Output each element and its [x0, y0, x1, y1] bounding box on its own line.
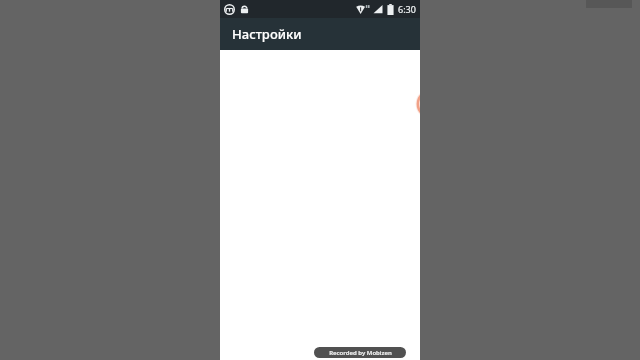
other: Battery: [387, 4, 394, 15]
button[interactable]: Настройки: [220, 18, 420, 50]
staticText: Настройки: [232, 25, 302, 43]
other: Wi-Fi, 4G: [356, 4, 370, 15]
other: Screen locked: [240, 4, 249, 15]
other: Cellular signal: [373, 4, 383, 14]
other: Clock 6:30: [398, 3, 416, 15]
staticText: 6:30: [398, 3, 416, 15]
staticText: Recorded by Mobizen: [329, 349, 392, 357]
other: Mobizen watermark: [415, 88, 420, 120]
other: Mobizen recorder: [224, 4, 235, 15]
button[interactable]: Recorded by Mobizen: [314, 347, 406, 358]
